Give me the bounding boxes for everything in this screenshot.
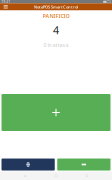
- button[interactable]: Stampa: [1, 158, 55, 170]
- button[interactable]: Menu: [1, 3, 10, 10]
- staticText: 10:21: [2, 0, 11, 3]
- staticText: NotaPOS SmartControl: [34, 4, 78, 9]
- staticText: ◀: [24, 174, 26, 177]
- staticText: 4: [53, 23, 59, 37]
- staticText: 0 in attesa: [43, 41, 68, 49]
- button[interactable]: Avanti: [57, 158, 110, 170]
- staticText: ▮▮▮: [103, 0, 106, 3]
- button[interactable]: Nuovo numero: [1, 94, 110, 131]
- button[interactable]: Back: [19, 171, 31, 180]
- staticText: PANIFICIO: [42, 12, 69, 20]
